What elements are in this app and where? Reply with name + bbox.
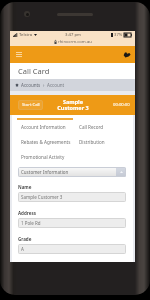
staticText: Sample Customer 3 — [21, 194, 63, 200]
button[interactable]: Customer Information — [18, 167, 126, 177]
button[interactable]: Sample Customer 3 — [18, 192, 126, 202]
staticText: Name — [18, 184, 32, 190]
staticText: 37% — [114, 32, 123, 38]
staticText: Distribution — [79, 139, 105, 145]
button[interactable]: Open navigation menu — [13, 49, 24, 60]
button[interactable]: Rhino CRM logo — [121, 49, 132, 60]
staticText: Grade — [18, 236, 32, 242]
button[interactable]: Accounts — [21, 82, 41, 88]
staticText: Start Call — [22, 102, 40, 108]
button[interactable]: Start Call — [18, 100, 43, 110]
staticText: Sample Customer 3 — [57, 98, 89, 112]
staticText: › — [43, 82, 45, 88]
staticText: Call Card — [18, 66, 50, 76]
staticText: 3:47 pm — [65, 32, 81, 38]
staticText: Address — [18, 210, 36, 216]
button[interactable]: Call Record — [79, 124, 133, 130]
staticText: Rebates & Agreements — [21, 139, 71, 145]
staticText: Account — [47, 82, 65, 88]
staticText: Promotional Activity — [21, 154, 65, 160]
button[interactable]: 1 Pole Rd — [18, 218, 126, 228]
staticText: Customer Information — [21, 169, 69, 175]
staticText: A — [21, 246, 24, 252]
button[interactable]: Account Information — [21, 124, 79, 130]
staticText: rhinocrm.com.au — [58, 39, 92, 45]
button[interactable]: Promotional Activity — [21, 154, 79, 160]
staticText: Call Record — [79, 124, 104, 130]
staticText: 1 Pole Rd — [21, 220, 41, 226]
staticText: Accounts — [21, 82, 41, 88]
button[interactable]: Rebates & Agreements — [21, 139, 79, 145]
button[interactable]: A — [18, 244, 126, 254]
button[interactable]: Distribution — [79, 139, 133, 145]
staticText: Telstra — [19, 32, 32, 38]
staticText: 00:00:00 — [113, 102, 130, 108]
staticText: Account Information — [21, 124, 66, 130]
